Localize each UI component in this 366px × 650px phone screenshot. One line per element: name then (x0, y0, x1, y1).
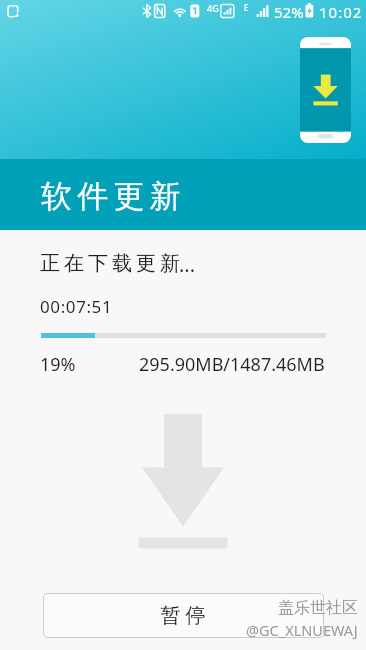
staticText: 4G (207, 2, 219, 14)
staticText: ... (179, 251, 196, 278)
staticText: 52% (274, 2, 304, 22)
staticText: 暂停 (158, 603, 208, 628)
staticText: 00:07:51 (40, 295, 113, 318)
staticText: 19% (40, 352, 76, 377)
button[interactable]: Smart capture (5, 2, 25, 20)
staticText: @GC_XLNUEWAJ (246, 620, 358, 640)
staticText: 正在下载更新 (38, 251, 182, 276)
button[interactable]: 暂停 (43, 593, 324, 638)
staticText: 295.90MB/1487.46MB (139, 352, 325, 377)
staticText: 软件更新 (41, 177, 186, 216)
staticText: E (244, 2, 249, 13)
staticText: 10:02 (319, 2, 363, 22)
staticText: 盖乐世社区 (278, 598, 358, 618)
